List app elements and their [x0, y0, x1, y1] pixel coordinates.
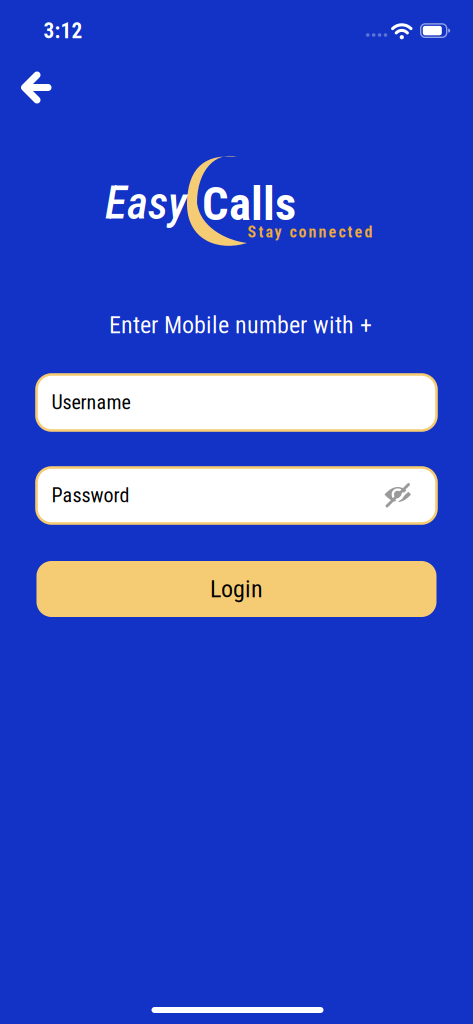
- button[interactable]: Password: [36, 467, 436, 523]
- staticText: Calls: [202, 177, 296, 231]
- staticText: Password: [51, 484, 129, 507]
- staticText: 3:12: [43, 19, 82, 43]
- button[interactable]: Show password: [36, 467, 436, 523]
- staticText: Enter Mobile number with +: [109, 311, 372, 339]
- staticText: Login: [210, 575, 263, 603]
- staticText: Username: [51, 391, 130, 414]
- staticText: Easy: [105, 177, 187, 229]
- staticText: Stay connected: [247, 223, 372, 241]
- button[interactable]: Back: [15, 71, 59, 103]
- button[interactable]: Username: [36, 374, 436, 430]
- button[interactable]: Login: [36, 561, 436, 617]
